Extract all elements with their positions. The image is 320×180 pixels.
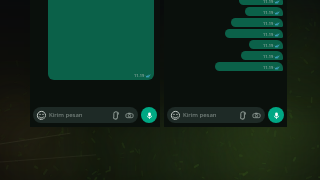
button[interactable]: Camera	[124, 110, 135, 121]
button[interactable]: Attach	[238, 110, 249, 121]
button[interactable]: Emoji	[33, 107, 138, 123]
button[interactable]: 11.19	[245, 7, 283, 16]
button[interactable]: 11.19	[225, 29, 283, 38]
staticText: 11.19	[263, 43, 274, 48]
button[interactable]: Voice message	[268, 107, 284, 123]
staticText: 11.19	[263, 32, 274, 37]
staticText: 11.19	[263, 0, 274, 4]
button[interactable]: 11.19	[249, 40, 283, 49]
staticText: 11.19	[263, 65, 274, 70]
staticText: 11.19	[263, 54, 274, 59]
button[interactable]: Emoji	[36, 110, 46, 120]
button[interactable]: 11.19	[215, 62, 283, 71]
button[interactable]: Emoji	[170, 110, 180, 120]
button[interactable]: Emoji	[167, 107, 265, 123]
staticText: Kirim pesan	[183, 111, 238, 119]
button[interactable]: Attach	[111, 110, 122, 121]
button[interactable]: 11.19	[48, 0, 154, 80]
button[interactable]: 11.19	[231, 18, 283, 27]
button[interactable]: 11.19	[239, 0, 283, 5]
staticText: Kirim pesan	[49, 111, 111, 119]
staticText: 11.19	[134, 73, 145, 78]
staticText: 11.19	[263, 21, 274, 26]
button[interactable]: Voice message	[141, 107, 157, 123]
staticText: 11.19	[263, 10, 274, 15]
button[interactable]: 11.19	[241, 51, 283, 60]
button[interactable]: Camera	[251, 110, 262, 121]
